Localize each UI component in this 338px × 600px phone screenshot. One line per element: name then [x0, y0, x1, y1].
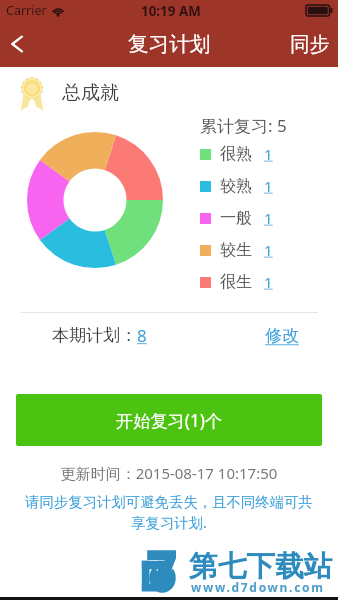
staticText: www.d7down.com: [191, 579, 325, 595]
staticText: 1: [264, 176, 273, 196]
staticText: 1: [264, 208, 273, 228]
button[interactable]: 较生: [200, 234, 273, 266]
staticText: 同步: [290, 32, 330, 57]
staticText: 8: [137, 324, 147, 347]
button[interactable]: 一般: [200, 202, 273, 234]
staticText: 本期计划：: [52, 325, 137, 346]
staticText: 更新时间：2015-08-17 10:17:50: [0, 463, 338, 483]
button[interactable]: 开始复习(1)个: [16, 394, 322, 446]
staticText: 1: [264, 240, 273, 260]
button[interactable]: 同步: [290, 21, 330, 67]
staticText: 开始复习(1)个: [116, 409, 223, 432]
staticText: 第七下载站: [189, 548, 333, 584]
button[interactable]: 修改: [265, 325, 299, 346]
staticText: 累计复习: 5: [200, 114, 287, 137]
staticText: 一般: [220, 208, 252, 228]
button[interactable]: 8: [137, 324, 147, 347]
staticText: 10:19 AM: [141, 2, 201, 20]
button[interactable]: 较熟: [200, 170, 273, 202]
staticText: 很生: [220, 272, 252, 292]
staticText: 复习计划: [128, 31, 211, 57]
button[interactable]: 很生: [200, 266, 273, 298]
staticText: 较熟: [220, 176, 252, 196]
staticText: 请同步复习计划可避免丢失，且不同终端可共享复习计划.: [23, 493, 315, 533]
staticText: 总成就: [62, 81, 119, 105]
button[interactable]: Back: [0, 21, 36, 67]
staticText: 修改: [265, 325, 299, 346]
button[interactable]: 很熟: [200, 138, 273, 170]
staticText: 1: [264, 272, 273, 292]
staticText: 很熟: [220, 144, 252, 164]
staticText: 1: [264, 144, 273, 164]
staticText: 较生: [220, 240, 252, 260]
staticText: Carrier: [6, 2, 47, 19]
